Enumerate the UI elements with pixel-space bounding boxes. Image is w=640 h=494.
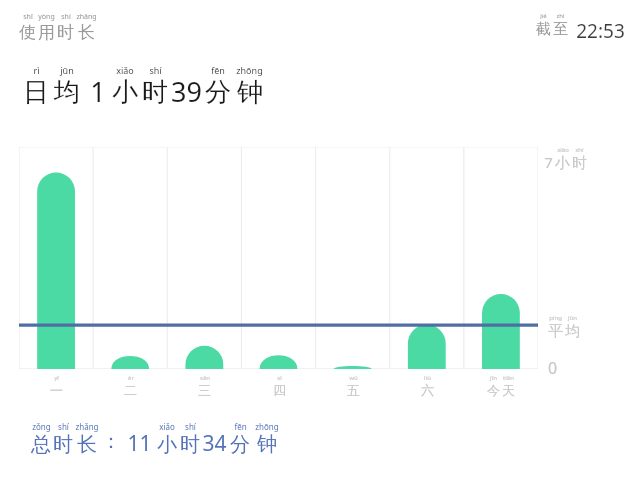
staticText: 今 <box>487 382 500 398</box>
staticText: 34 <box>202 429 227 458</box>
staticText: zǒng <box>32 421 51 432</box>
staticText: fēn <box>211 64 225 76</box>
button[interactable]: rì <box>22 64 264 110</box>
staticText: 小 <box>555 154 570 173</box>
staticText: 平 <box>548 322 563 341</box>
staticText: 时 <box>142 76 168 109</box>
staticText: 39 <box>171 73 202 110</box>
staticText: 日 <box>23 76 49 109</box>
staticText: 长 <box>78 22 95 43</box>
staticText: shí <box>58 421 69 432</box>
staticText: yī <box>54 374 59 382</box>
staticText: 均 <box>565 322 580 341</box>
button[interactable]: jīn <box>479 374 523 398</box>
staticText: 时 <box>572 154 587 173</box>
staticText: xiǎo <box>116 64 134 76</box>
staticText: èr <box>128 374 134 382</box>
staticText: 一 <box>50 382 63 398</box>
staticText: jié <box>540 12 547 20</box>
staticText: zhōng <box>236 64 263 76</box>
staticText: tiān <box>503 374 514 382</box>
button[interactable]: liù <box>413 374 441 398</box>
staticText: zhì <box>556 12 565 20</box>
staticText: shí <box>61 12 71 22</box>
staticText: jūn <box>568 314 577 322</box>
button[interactable]: sān <box>190 374 218 398</box>
staticText: 长 <box>77 432 97 457</box>
staticText: zhōng <box>255 421 279 432</box>
staticText: zhǎng <box>75 421 99 432</box>
staticText: 三 <box>198 382 211 398</box>
staticText: 时 <box>53 432 73 457</box>
staticText: sān <box>200 374 210 382</box>
staticText: yòng <box>38 12 55 22</box>
staticText: 时 <box>57 22 74 43</box>
staticText: jīn <box>490 374 497 382</box>
staticText: 11 <box>127 429 152 458</box>
button[interactable]: yī <box>42 374 70 398</box>
button[interactable]: zǒng <box>30 421 280 458</box>
staticText: zhǎng <box>76 12 97 22</box>
staticText: 五 <box>347 382 360 398</box>
staticText: 用 <box>38 22 55 43</box>
staticText: sì <box>277 374 282 382</box>
staticText: píng <box>549 314 562 322</box>
staticText: liù <box>424 374 431 382</box>
staticText: shí <box>185 421 196 432</box>
staticText: wǔ <box>349 374 358 382</box>
staticText: ： <box>101 429 121 454</box>
staticText: 二 <box>124 382 137 398</box>
staticText: 钟 <box>237 76 263 109</box>
staticText: 22:53 <box>576 18 625 44</box>
staticText: 截 <box>536 20 551 39</box>
staticText: 小 <box>112 76 138 109</box>
staticText: 7 <box>544 152 553 172</box>
staticText: 1 <box>90 73 106 110</box>
staticText: fēn <box>234 421 247 432</box>
button[interactable]: jié <box>535 12 626 44</box>
staticText: 均 <box>54 76 80 109</box>
staticText: shǐ <box>23 12 33 22</box>
staticText: 分 <box>205 76 231 109</box>
staticText: 使 <box>19 22 36 43</box>
button[interactable]: shǐ <box>18 12 98 43</box>
button[interactable]: sì <box>265 374 293 398</box>
staticText: 至 <box>553 20 568 39</box>
staticText: rì <box>33 64 40 76</box>
staticText: xiǎo <box>557 146 569 154</box>
staticText: xiǎo <box>159 421 175 432</box>
staticText: 小 <box>157 432 177 457</box>
staticText: 0 <box>548 357 558 379</box>
staticText: 总 <box>31 432 51 457</box>
staticText: jūn <box>60 64 74 76</box>
staticText: 时 <box>180 432 200 457</box>
staticText: shí <box>149 64 162 76</box>
staticText: 分 <box>230 432 250 457</box>
staticText: 四 <box>273 382 286 398</box>
staticText: 天 <box>502 382 515 398</box>
button[interactable]: wǔ <box>339 374 367 398</box>
button[interactable]: èr <box>116 374 144 398</box>
staticText: shí <box>575 146 584 154</box>
staticText: 六 <box>421 382 434 398</box>
staticText: 钟 <box>257 432 277 457</box>
